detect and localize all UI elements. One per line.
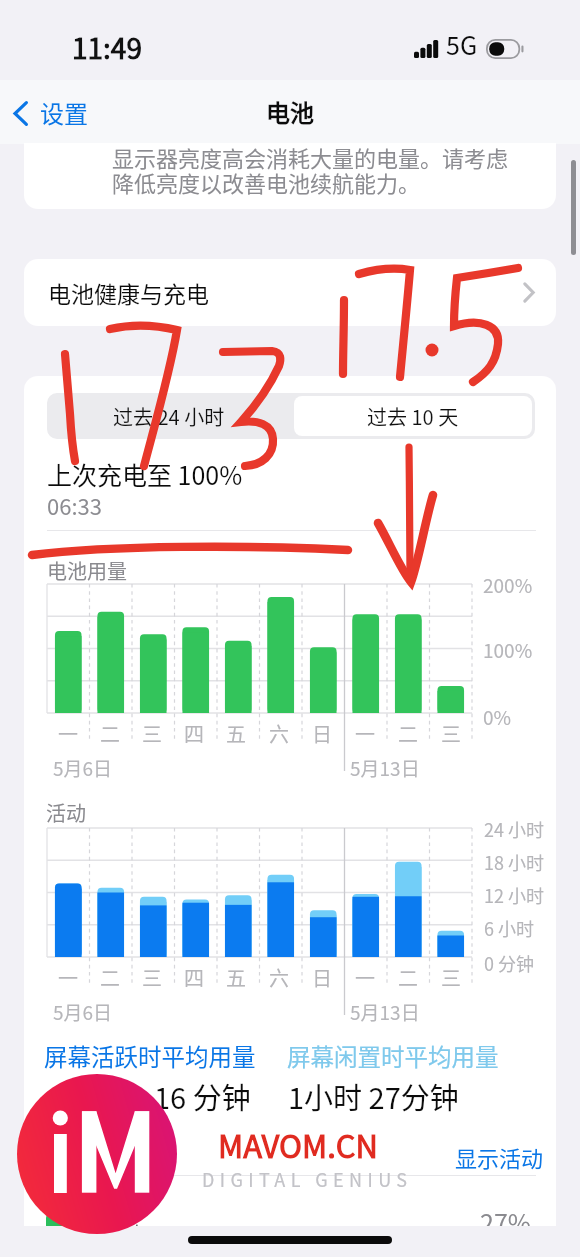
staticText: 一: [355, 719, 375, 748]
staticText: 三: [441, 963, 461, 992]
staticText: 5月6日: [53, 754, 113, 782]
button[interactable]: 设置: [5, 89, 96, 138]
staticText: 三: [142, 719, 162, 748]
staticText: 三: [441, 719, 461, 748]
staticText: 日: [312, 719, 332, 748]
staticText: 0%: [483, 703, 512, 731]
staticText: 200%: [483, 571, 533, 599]
staticText: 06:33: [47, 489, 102, 521]
staticText: 六: [269, 719, 289, 748]
staticText: 二: [398, 963, 418, 992]
staticText: 四: [184, 719, 204, 748]
staticText: 设置: [40, 95, 88, 130]
staticText: 屏幕闲置时平均用量: [287, 1039, 499, 1073]
staticText: 12 小时: [484, 882, 545, 908]
staticText: 显示活动: [455, 1141, 544, 1173]
staticText: 一: [58, 963, 78, 992]
staticText: 5月6日: [53, 998, 113, 1026]
staticText: 四: [184, 963, 204, 992]
staticText: 降低亮度以改善电池续航能力。: [112, 166, 421, 198]
staticText: 显示器亮度高会消耗大量的电量。请考虑: [112, 143, 509, 173]
staticText: 16 分钟: [154, 1075, 251, 1117]
staticText: DIGITAL GENIUS: [202, 1166, 413, 1192]
staticText: 过去 24 小时: [113, 402, 225, 431]
staticText: 6 小时: [484, 915, 535, 941]
staticText: 1小时 27分钟: [288, 1075, 459, 1117]
staticText: 二: [100, 719, 120, 748]
staticText: 五: [226, 963, 246, 992]
staticText: 日: [312, 963, 332, 992]
staticText: 电池: [266, 94, 314, 129]
staticText: 电池用量: [47, 556, 127, 585]
staticText: 18 小时: [484, 849, 545, 875]
staticText: 二: [398, 719, 418, 748]
staticText: 通知: [112, 1218, 154, 1226]
staticText: MAVOM.CN: [218, 1122, 379, 1167]
staticText: 一: [58, 719, 78, 748]
staticText: 100%: [483, 636, 533, 664]
staticText: 六: [269, 963, 289, 992]
staticText: 5月13日: [350, 754, 420, 782]
button[interactable]: 电池健康与充电: [24, 259, 556, 326]
staticText: 27%: [480, 1204, 531, 1226]
staticText: 三: [142, 963, 162, 992]
staticText: 一: [355, 963, 375, 992]
staticText: 5G: [446, 26, 478, 62]
staticText: 5月13日: [350, 998, 420, 1026]
staticText: 二: [100, 963, 120, 992]
staticText: 屏幕活跃时平均用量: [44, 1039, 256, 1073]
staticText: 0 分钟: [484, 950, 535, 976]
staticText: 11:49: [72, 27, 142, 68]
staticText: 上次充电至 100%: [47, 456, 243, 492]
button[interactable]: 显示活动: [447, 1133, 552, 1181]
staticText: 24 小时: [484, 816, 545, 842]
staticText: 过去 10 天: [367, 402, 459, 431]
staticText: 活动: [46, 798, 86, 827]
button[interactable]: 过去 24 小时: [47, 393, 291, 439]
staticText: 电池健康与充电: [48, 276, 209, 309]
staticText: 五: [226, 719, 246, 748]
button[interactable]: 过去 10 天: [294, 396, 532, 436]
